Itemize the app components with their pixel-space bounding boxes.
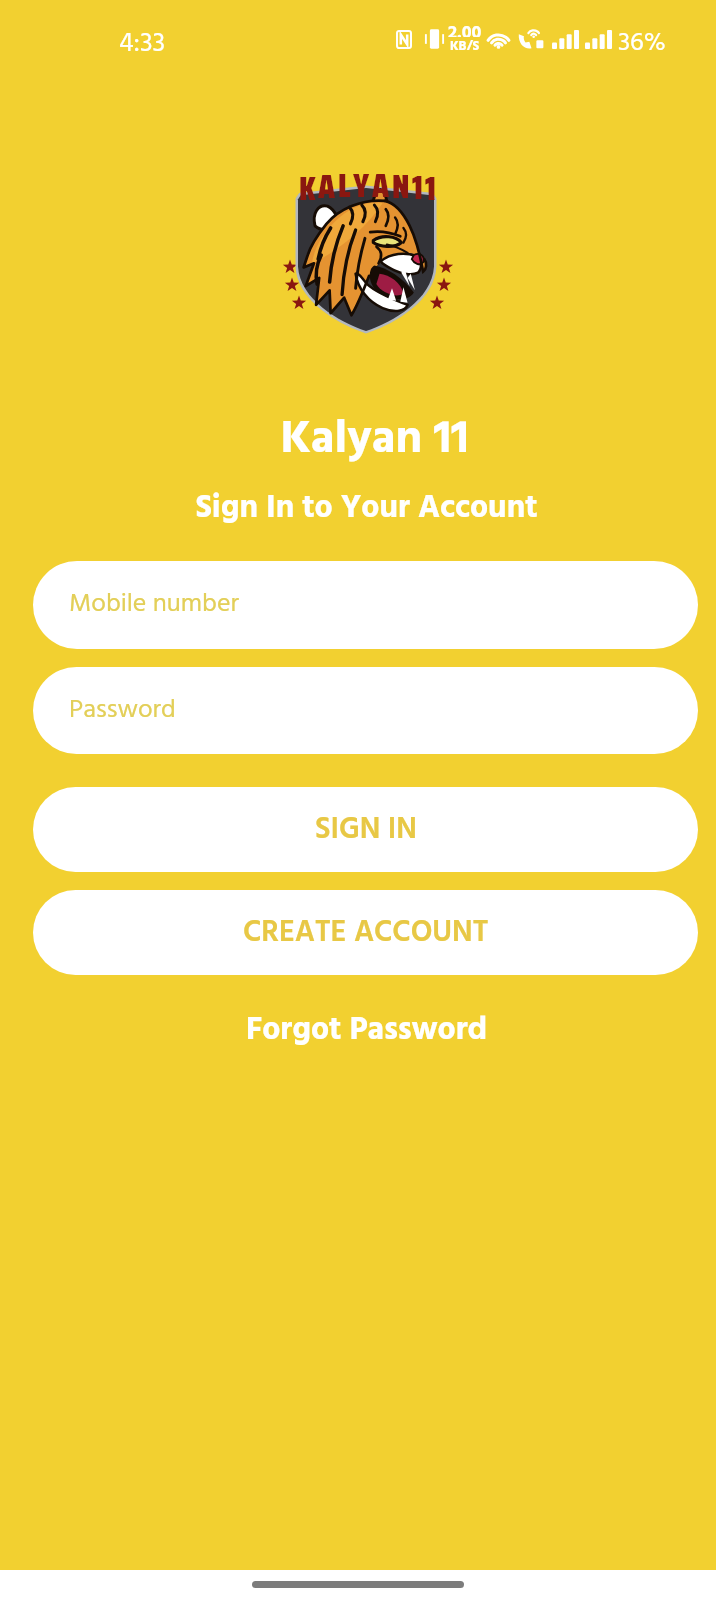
button[interactable]: SIGN IN xyxy=(33,787,698,872)
staticText: Mobile number xyxy=(69,584,239,626)
staticText: KB/S xyxy=(450,36,480,50)
staticText: 36% xyxy=(618,23,666,65)
staticText: Forgot Password xyxy=(246,1005,488,1056)
button[interactable]: Password xyxy=(33,667,698,754)
staticText: Kalyan 11 xyxy=(33,403,716,477)
staticText: 1 xyxy=(425,163,438,215)
staticText: L xyxy=(338,160,353,212)
button[interactable]: CREATE ACCOUNT xyxy=(33,890,698,975)
other: Kalyan 11 logo xyxy=(268,155,468,335)
staticText: 4:33 xyxy=(119,23,166,66)
staticText: A xyxy=(318,161,338,213)
staticText: K xyxy=(299,163,318,215)
staticText: SIGN IN xyxy=(315,806,417,854)
staticText: A xyxy=(372,160,392,212)
staticText: N xyxy=(392,161,412,213)
staticText: Sign In to Your Account xyxy=(17,483,716,534)
staticText: 1 xyxy=(412,162,425,214)
staticText: CREATE ACCOUNT xyxy=(243,909,489,957)
button[interactable]: Forgot Password xyxy=(0,1002,716,1058)
staticText: Password xyxy=(69,690,176,732)
staticText: Y xyxy=(353,160,372,212)
staticText: 2.00 xyxy=(448,19,482,37)
button[interactable]: Mobile number xyxy=(33,561,698,649)
